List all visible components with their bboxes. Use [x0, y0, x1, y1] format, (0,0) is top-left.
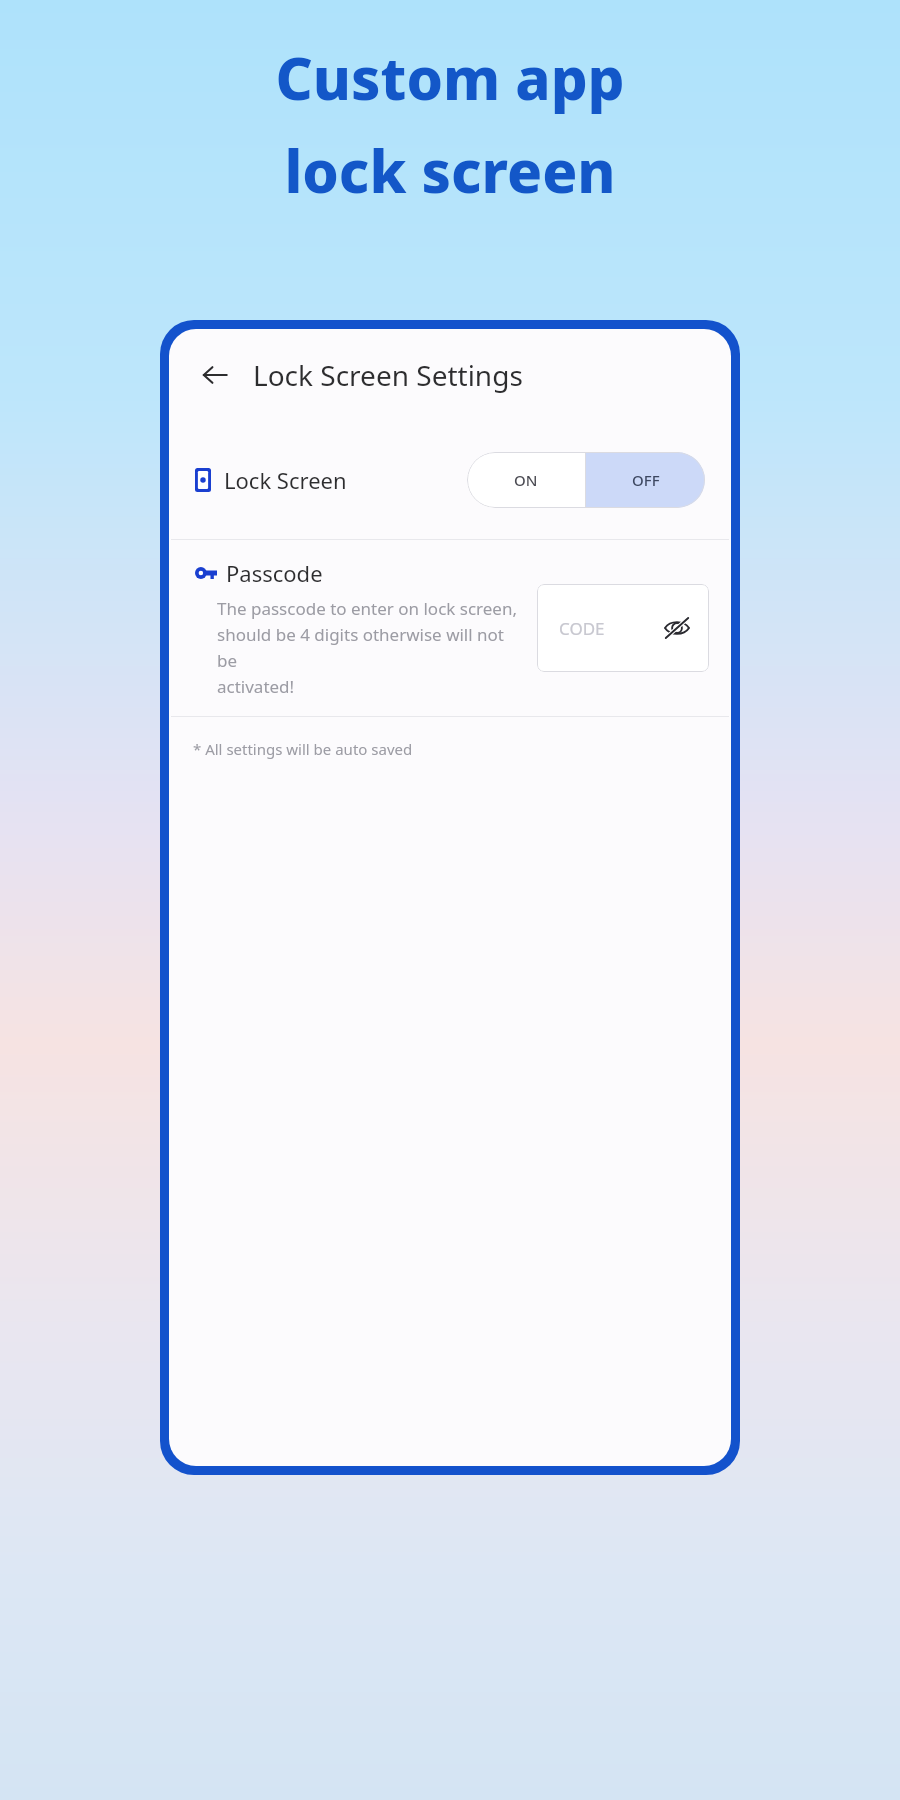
button[interactable]: CODE — [537, 584, 709, 672]
button[interactable]: ON — [467, 452, 585, 508]
button[interactable]: Toggle passcode visibility — [659, 610, 695, 646]
staticText: * All settings will be auto saved — [193, 739, 413, 759]
staticText: CODE — [559, 617, 605, 640]
staticText: ON — [514, 470, 538, 490]
staticText: Passcode — [226, 558, 323, 588]
staticText: OFF — [632, 470, 660, 490]
staticText: The passcode to enter on lock screen, sh… — [217, 597, 527, 698]
button[interactable]: OFF — [586, 452, 705, 508]
button[interactable]: Back — [193, 353, 237, 397]
staticText: lock screen — [284, 131, 616, 210]
staticText: Lock Screen Settings — [253, 356, 523, 394]
staticText: Lock Screen — [224, 465, 347, 495]
staticText: Custom app — [275, 38, 625, 117]
